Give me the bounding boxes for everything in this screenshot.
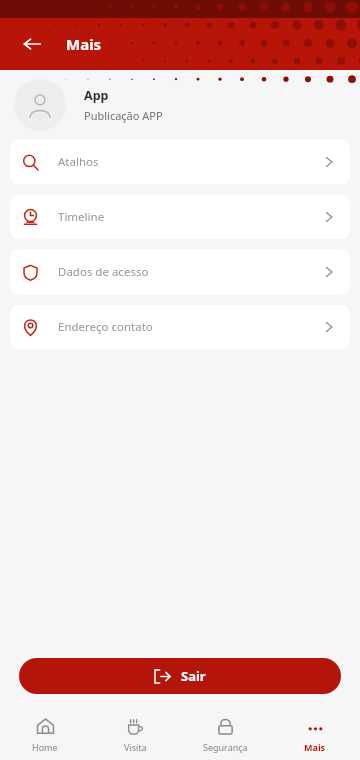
button[interactable]: Voltar [18,30,46,58]
button[interactable]: Endereço contato [10,305,350,349]
staticText: Publicação APP [84,108,163,123]
staticText: Segurança [203,741,248,753]
button[interactable]: Dados de acesso [10,250,350,294]
staticText: Atalhos [58,154,99,170]
button[interactable]: Visita [90,708,180,760]
button[interactable]: App [0,70,360,140]
staticText: Timeline [58,209,105,225]
staticText: Sair [181,667,206,685]
staticText: Mais [304,741,326,753]
staticText: Home [32,741,58,753]
button[interactable]: Segurança [180,708,270,760]
button[interactable]: Atalhos [10,140,350,184]
staticText: Endereço contato [58,319,153,335]
button[interactable]: Timeline [10,195,350,239]
staticText: App [84,87,109,104]
button[interactable]: Home [0,708,90,760]
staticText: Visita [124,741,147,753]
staticText: Mais [66,34,102,54]
button[interactable]: Mais [270,708,360,760]
staticText: Dados de acesso [58,264,149,280]
button[interactable]: Sair [19,658,341,694]
